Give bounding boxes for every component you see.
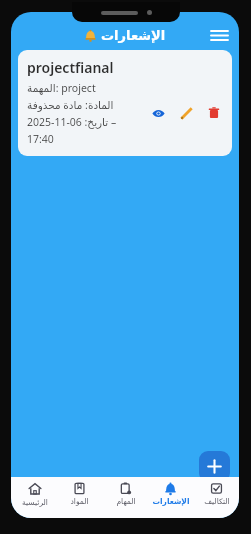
button[interactable]: projectfianal (18, 50, 232, 156)
button[interactable]: View (149, 104, 167, 122)
staticText: المادة: مادة محذوفة (27, 98, 114, 112)
button[interactable]: Delete (205, 104, 223, 122)
staticText: الإشعارات (152, 497, 190, 506)
staticText: المهام (116, 497, 136, 506)
button[interactable]: المهام (103, 477, 148, 518)
button[interactable]: Add notification (199, 451, 230, 482)
staticText: تاريخ: 06-11-2025 – (27, 115, 117, 129)
staticText: الرئيسية (22, 498, 48, 507)
staticText: المهمة: project (27, 81, 96, 95)
button[interactable]: المواد (57, 477, 102, 518)
button[interactable]: Menu (207, 23, 231, 47)
button[interactable]: الرئيسية (12, 477, 57, 518)
staticText: 17:40 (27, 132, 54, 146)
button[interactable]: الإشعارات (148, 477, 193, 518)
staticText: المواد (70, 497, 89, 506)
staticText: الإشعارات (101, 28, 166, 43)
button[interactable]: Edit (177, 104, 195, 122)
button[interactable]: التكاليف (194, 477, 239, 518)
staticText: التكاليف (204, 497, 230, 506)
staticText: projectfianal (27, 58, 114, 77)
